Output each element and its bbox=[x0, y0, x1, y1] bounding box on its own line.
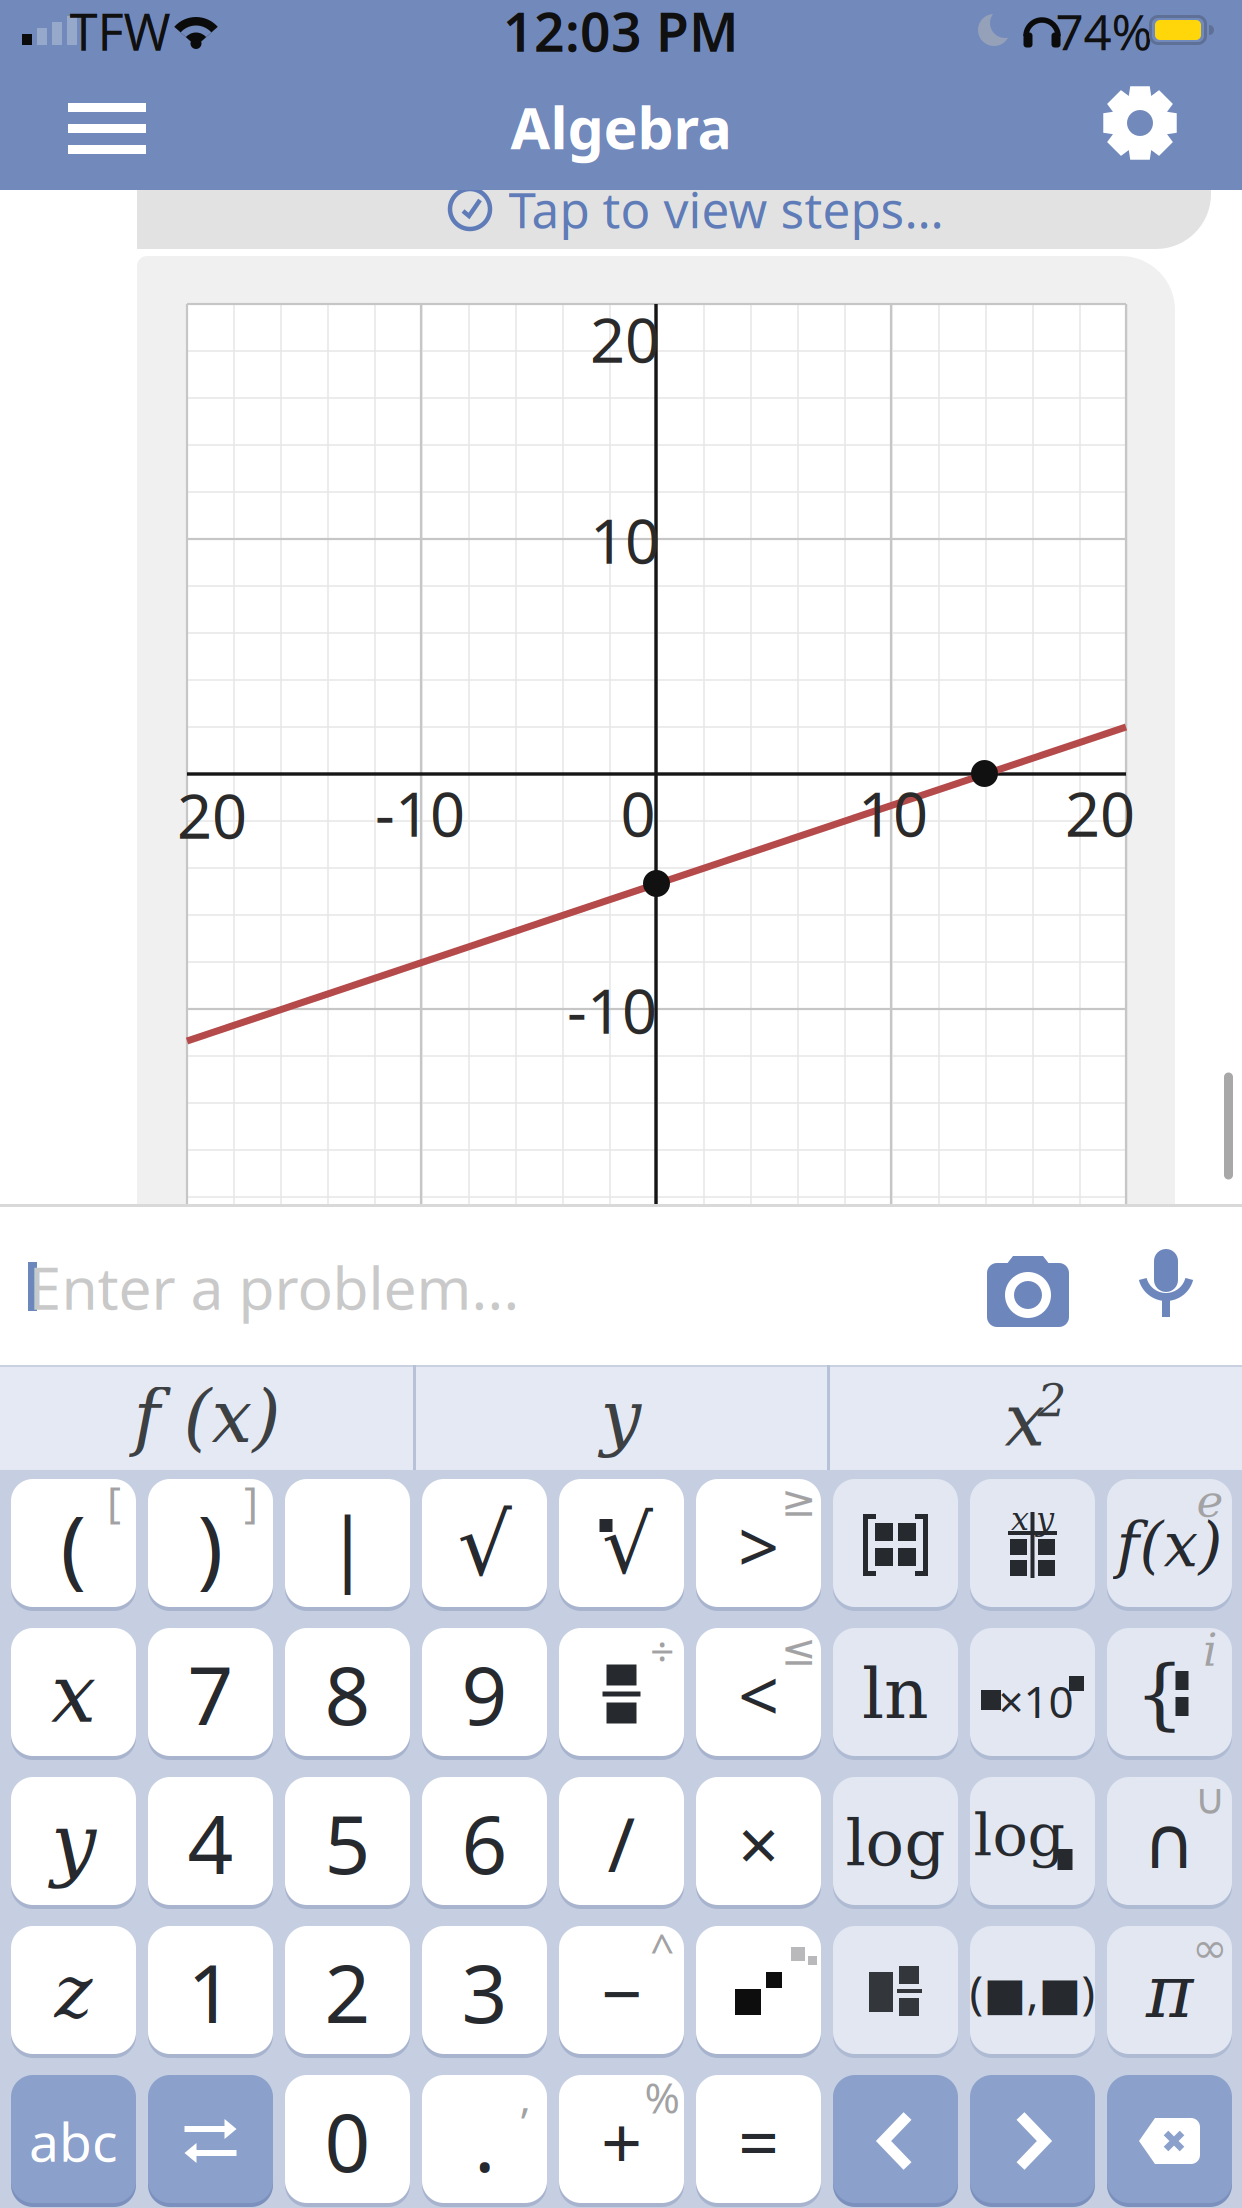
button[interactable]: √ bbox=[422, 1479, 547, 1607]
button[interactable]: abc bbox=[11, 2075, 136, 2203]
button[interactable]: Fraction bbox=[559, 1628, 684, 1756]
staticText: 2 bbox=[1037, 1374, 1066, 1427]
staticText: 3 bbox=[461, 1939, 507, 2045]
button[interactable]: Tap to view steps... bbox=[0, 0, 1242, 2208]
button[interactable]: 5 bbox=[285, 1777, 410, 1905]
button[interactable]: × bbox=[696, 1777, 821, 1905]
button[interactable]: . bbox=[422, 2075, 547, 2203]
button[interactable]: ( bbox=[11, 1479, 136, 1607]
button[interactable]: z bbox=[11, 1926, 136, 2054]
staticText: 1 bbox=[187, 1939, 233, 2045]
button[interactable]: Move right bbox=[970, 2075, 1095, 2203]
staticText: x bbox=[51, 1647, 96, 1740]
staticText: = bbox=[738, 2093, 779, 2189]
staticText: 7 bbox=[187, 1641, 233, 1747]
button[interactable]: = bbox=[696, 2075, 821, 2203]
staticText: abc bbox=[29, 2106, 118, 2176]
staticText: ] bbox=[244, 1473, 258, 1529]
staticText: 5 bbox=[324, 1790, 370, 1896]
button[interactable]: 4 bbox=[148, 1777, 273, 1905]
button[interactable]: Microphone bbox=[1131, 1237, 1201, 1337]
staticText: 12:03 PM bbox=[503, 0, 739, 66]
staticText: y bbox=[51, 1796, 96, 1889]
button[interactable]: Mixed number bbox=[833, 1926, 958, 2054]
button[interactable]: Move left bbox=[833, 2075, 958, 2203]
button[interactable]: 7 bbox=[148, 1628, 273, 1756]
staticText: { bbox=[1135, 1648, 1184, 1738]
staticText: ( bbox=[60, 1488, 86, 1602]
button[interactable]: f (x) bbox=[2, 1364, 412, 1469]
button[interactable]: log bbox=[833, 1777, 958, 1905]
staticText: , bbox=[519, 2069, 530, 2125]
button[interactable]: Backspace bbox=[1107, 2075, 1232, 2203]
staticText: ) bbox=[197, 1488, 223, 1602]
button[interactable]: 1 bbox=[148, 1926, 273, 2054]
staticText: 20 bbox=[590, 298, 660, 380]
staticText: ∩ bbox=[1143, 1802, 1196, 1884]
button[interactable]: + bbox=[559, 2075, 684, 2203]
button[interactable]: Settings bbox=[1085, 68, 1195, 178]
staticText: + bbox=[601, 2093, 642, 2189]
staticText: 20 bbox=[177, 774, 247, 856]
staticText: ≤ bbox=[781, 1626, 817, 1674]
button[interactable]: (■,■) bbox=[970, 1926, 1095, 2054]
button[interactable]: x bbox=[830, 1364, 1240, 1469]
staticText: × bbox=[738, 1795, 779, 1891]
staticText: i bbox=[1203, 1624, 1217, 1676]
staticText: (■,■) bbox=[969, 1962, 1095, 2022]
button[interactable]: 6 bbox=[422, 1777, 547, 1905]
staticText: Tap to view steps... bbox=[508, 176, 943, 242]
button[interactable]: 9 bbox=[422, 1628, 547, 1756]
staticText: 8 bbox=[324, 1641, 370, 1747]
button[interactable]: log bbox=[970, 1777, 1095, 1905]
button[interactable]: Camera bbox=[973, 1238, 1083, 1338]
staticText: log bbox=[845, 1806, 945, 1880]
button[interactable]: Menu bbox=[52, 73, 162, 183]
button[interactable]: π bbox=[1107, 1926, 1232, 2054]
button[interactable]: 0 bbox=[285, 2075, 410, 2203]
button[interactable]: f(x) bbox=[1107, 1479, 1232, 1607]
staticText: -10 bbox=[375, 772, 465, 854]
staticText: TFW bbox=[69, 0, 170, 65]
button[interactable]: Piecewise bbox=[1107, 1628, 1232, 1756]
staticText: ∞ bbox=[1192, 1924, 1228, 1972]
button[interactable]: y bbox=[11, 1777, 136, 1905]
button[interactable]: | bbox=[285, 1479, 410, 1607]
button[interactable]: x bbox=[11, 1628, 136, 1756]
staticText: f (x) bbox=[133, 1375, 280, 1459]
staticText: 9 bbox=[461, 1641, 507, 1747]
staticText: 10 bbox=[858, 772, 928, 854]
staticText: − bbox=[601, 1944, 642, 2040]
staticText: Algebra bbox=[510, 89, 731, 165]
button[interactable]: Swap bbox=[148, 2075, 273, 2203]
staticText: ×10 bbox=[998, 1672, 1073, 1730]
button[interactable]: − bbox=[559, 1926, 684, 2054]
button[interactable]: 2 bbox=[285, 1926, 410, 2054]
button[interactable]: Nth root bbox=[559, 1479, 684, 1607]
button[interactable]: Table bbox=[970, 1479, 1095, 1607]
staticText: ∪ bbox=[1194, 1775, 1225, 1823]
button[interactable]: y bbox=[416, 1364, 826, 1469]
button[interactable]: 3 bbox=[422, 1926, 547, 2054]
button[interactable]: 8 bbox=[285, 1628, 410, 1756]
staticText: / bbox=[607, 1793, 635, 1893]
staticText: 20 bbox=[1065, 772, 1135, 854]
button[interactable]: / bbox=[559, 1777, 684, 1905]
staticText: 0 bbox=[620, 772, 655, 854]
button[interactable]: < bbox=[696, 1628, 821, 1756]
staticText: [ bbox=[107, 1473, 121, 1529]
staticText: < bbox=[738, 1646, 779, 1742]
staticText: -10 bbox=[567, 969, 657, 1051]
button[interactable]: ∩ bbox=[1107, 1777, 1232, 1905]
staticText: 6 bbox=[461, 1790, 507, 1896]
button[interactable]: Scientific notation bbox=[970, 1628, 1095, 1756]
staticText: 0 bbox=[324, 2088, 370, 2194]
button[interactable]: > bbox=[696, 1479, 821, 1607]
button[interactable]: Matrix bbox=[833, 1479, 958, 1607]
button[interactable]: Exponent bbox=[696, 1926, 821, 2054]
button[interactable]: ln bbox=[833, 1628, 958, 1756]
staticText: > bbox=[738, 1497, 779, 1593]
button[interactable]: ) bbox=[148, 1479, 273, 1607]
staticText: ≥ bbox=[781, 1477, 817, 1525]
staticText: ln bbox=[862, 1654, 929, 1734]
